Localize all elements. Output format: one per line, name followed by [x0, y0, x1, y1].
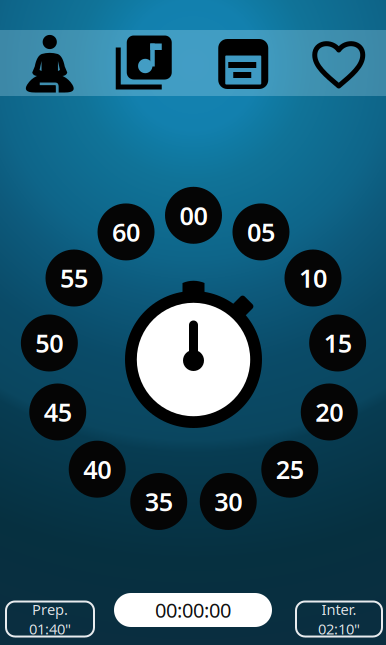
- button[interactable]: 25: [261, 441, 318, 498]
- button[interactable]: 40: [69, 441, 126, 498]
- staticText: 10: [299, 261, 327, 295]
- staticText: 15: [324, 326, 352, 360]
- button[interactable]: Meditate: [0, 33, 96, 92]
- staticText: 00:00:00: [155, 597, 231, 623]
- staticText: 20: [315, 395, 343, 429]
- staticText: 50: [35, 326, 63, 360]
- staticText: 40: [83, 452, 111, 486]
- button[interactable]: 35: [130, 473, 187, 530]
- staticText: Inter.: [321, 599, 356, 619]
- button[interactable]: Music: [96, 35, 193, 90]
- button[interactable]: 45: [29, 383, 86, 440]
- staticText: 02:10": [318, 619, 360, 638]
- staticText: 55: [60, 261, 88, 295]
- button[interactable]: 05: [232, 203, 289, 260]
- staticText: 35: [145, 485, 173, 518]
- staticText: 30: [214, 485, 242, 518]
- staticText: 01:40": [29, 619, 71, 638]
- button[interactable]: Favorites: [289, 38, 386, 88]
- button[interactable]: 15: [309, 314, 366, 371]
- button[interactable]: Notes: [193, 38, 289, 88]
- button[interactable]: 60: [97, 203, 154, 260]
- staticText: Prep.: [32, 599, 68, 619]
- button[interactable]: Prep.: [6, 601, 94, 636]
- button[interactable]: Inter.: [296, 601, 382, 636]
- button[interactable]: 55: [45, 249, 102, 306]
- staticText: 25: [276, 452, 304, 486]
- button[interactable]: 20: [301, 383, 358, 440]
- staticText: 60: [112, 215, 140, 249]
- button[interactable]: 00:00:00: [114, 593, 272, 627]
- button[interactable]: 00: [165, 187, 222, 244]
- staticText: 45: [44, 395, 72, 429]
- button[interactable]: 30: [200, 473, 257, 530]
- staticText: 00: [179, 198, 207, 232]
- button[interactable]: 10: [284, 249, 341, 306]
- staticText: 05: [247, 215, 275, 249]
- button[interactable]: 50: [21, 314, 78, 371]
